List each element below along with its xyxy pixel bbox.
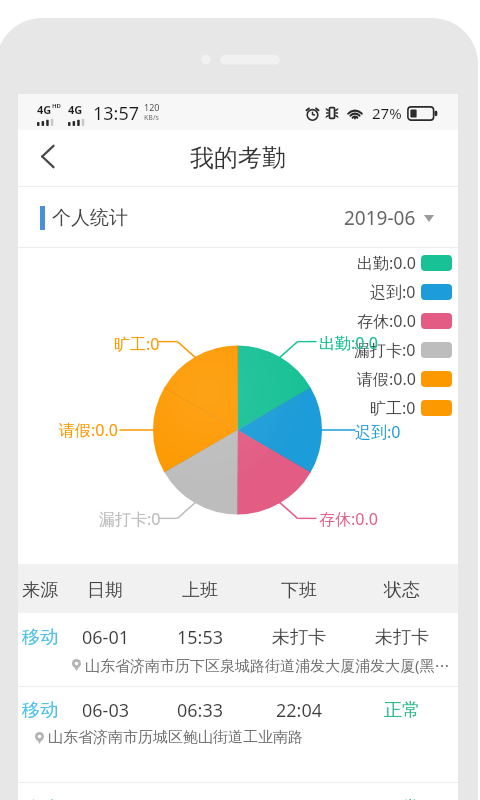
staticText: 06-01 — [82, 625, 129, 650]
staticText: 4G — [37, 102, 52, 117]
staticText: HD — [52, 102, 61, 110]
staticText: 日期 — [87, 579, 123, 602]
staticText: 27% — [372, 103, 402, 123]
button[interactable]: 移动 — [18, 687, 458, 783]
staticText: 状态 — [384, 579, 420, 602]
button[interactable]: Back — [23, 132, 71, 180]
staticText: 15:53 — [177, 625, 224, 650]
staticText: 出勤:0.0 — [357, 252, 416, 274]
staticText: 我的考勤 — [190, 143, 286, 173]
staticText: 4G — [68, 102, 83, 117]
staticText: 请假:0.0 — [357, 368, 416, 390]
staticText: 请假:0.0 — [59, 419, 118, 441]
staticText: 山东省济南市历城区鲍山街道工业南路 — [48, 728, 303, 747]
staticText: 移动 — [22, 699, 58, 722]
staticText: 正常 — [384, 699, 420, 722]
staticText: 13:57 — [93, 101, 140, 126]
staticText: 移动 — [22, 797, 58, 800]
button[interactable]: 移动 — [18, 613, 458, 687]
button[interactable]: 2019-06 — [344, 205, 434, 231]
staticText: 个人统计 — [52, 206, 128, 230]
staticText: 未打卡 — [272, 626, 326, 649]
staticText: 漏打卡:0 — [354, 339, 416, 361]
staticText: 正常 — [384, 797, 420, 800]
staticText: 山东省济南市历下区泉城路街道浦发大厦浦发大厦(黑色大厦) — [85, 655, 452, 675]
staticText: 迟到:0 — [370, 281, 416, 303]
staticText: 旷工:0 — [114, 333, 160, 355]
staticText: 120 — [144, 101, 160, 113]
staticText: 迟到:0 — [355, 421, 401, 443]
staticText: 未打卡 — [375, 626, 429, 649]
staticText: 漏打卡:0 — [99, 508, 161, 530]
staticText: 来源 — [22, 579, 58, 602]
staticText: 存休:0.0 — [357, 310, 416, 332]
staticText: 旷工:0 — [370, 397, 416, 419]
staticText: 22:04 — [276, 698, 323, 723]
staticText: 下班 — [281, 579, 317, 602]
staticText: 上班 — [182, 579, 218, 602]
staticText: 06-03 — [82, 698, 129, 723]
staticText: 存休:0.0 — [319, 508, 378, 530]
staticText: 2019-06 — [344, 205, 416, 231]
staticText: 06:33 — [177, 698, 224, 723]
staticText: 出勤:0.0 — [319, 332, 378, 354]
staticText: KB/s — [144, 113, 159, 123]
staticText: 移动 — [22, 626, 58, 649]
